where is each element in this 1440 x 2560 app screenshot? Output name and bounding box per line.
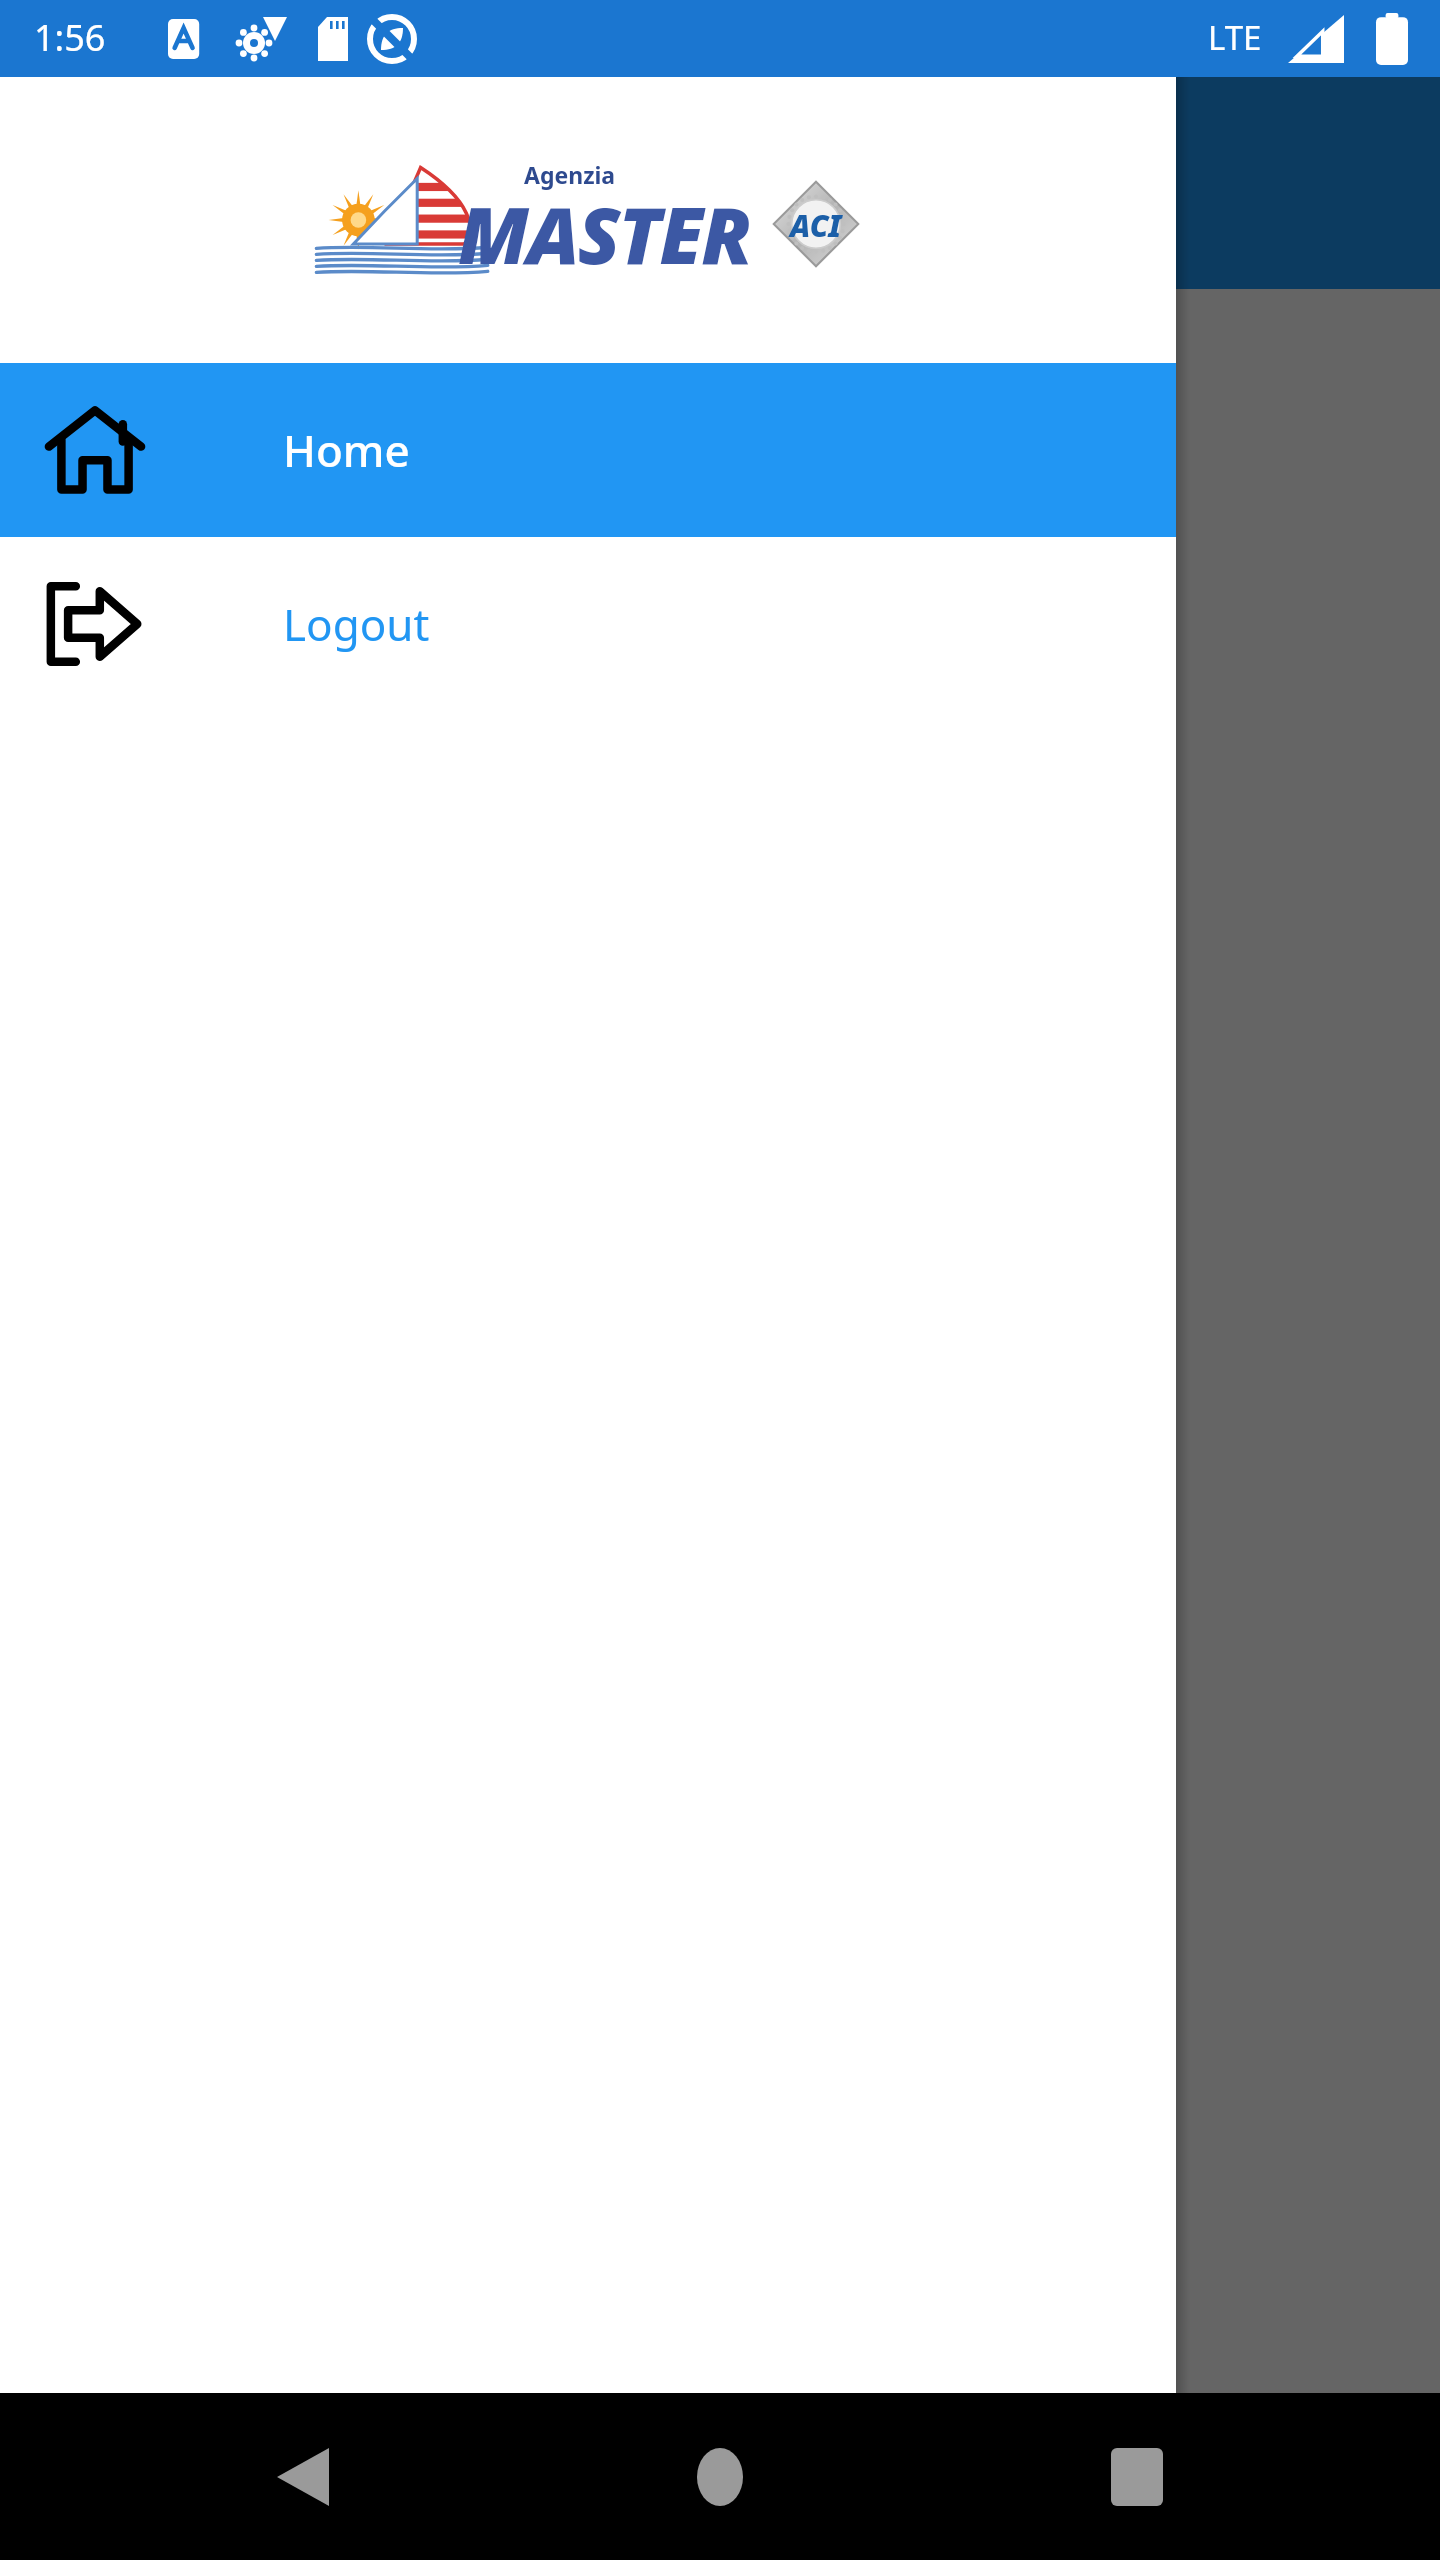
staticText: 1:56: [34, 13, 106, 62]
staticText: Agenzia: [524, 159, 616, 190]
staticText: LTE: [1208, 15, 1262, 60]
button[interactable]: Recent apps: [1082, 2422, 1192, 2532]
staticText: Logout: [283, 594, 430, 654]
staticText: Home: [283, 420, 410, 480]
button[interactable]: Logout: [0, 537, 1176, 711]
button[interactable]: Home: [0, 363, 1176, 537]
other: Home: [47, 407, 143, 493]
staticText: MASTER: [458, 181, 750, 287]
staticText: ACI: [790, 205, 842, 246]
other: Logout: [47, 581, 143, 667]
button[interactable]: Home: [665, 2422, 775, 2532]
button[interactable]: Back: [248, 2422, 358, 2532]
